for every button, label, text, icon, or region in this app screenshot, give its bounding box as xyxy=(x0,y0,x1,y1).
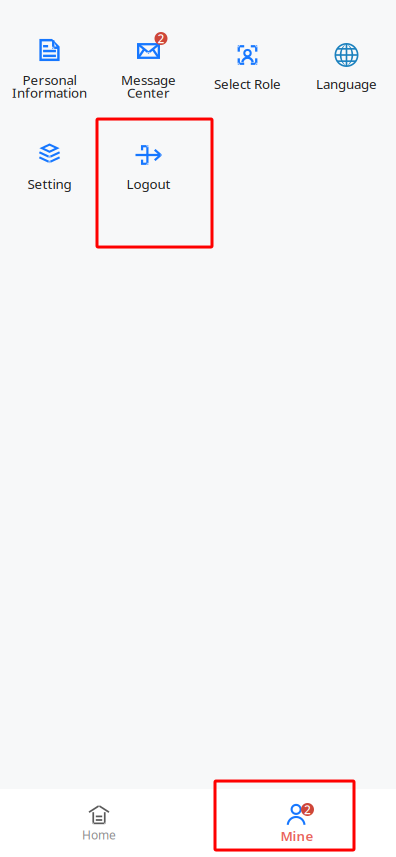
staticText: Home xyxy=(82,827,116,843)
button[interactable]: Language xyxy=(297,0,396,99)
staticText: Select Role xyxy=(214,75,281,93)
staticText: Information xyxy=(12,84,87,101)
button[interactable]: 2 xyxy=(99,0,198,99)
staticText: 2 xyxy=(157,30,164,46)
staticText: Mine xyxy=(280,827,313,845)
button[interactable]: Logout xyxy=(99,99,198,198)
staticText: Personal xyxy=(22,71,76,89)
staticText: 2 xyxy=(304,801,311,817)
staticText: Setting xyxy=(27,175,71,193)
staticText: Center xyxy=(127,84,170,101)
staticText: Logout xyxy=(126,175,170,193)
button[interactable]: Personal xyxy=(0,0,99,99)
button[interactable]: Setting xyxy=(0,99,99,198)
staticText: Message xyxy=(121,71,176,89)
button[interactable]: Home xyxy=(0,789,198,857)
button[interactable]: Select Role xyxy=(198,0,297,99)
staticText: Language xyxy=(316,75,377,93)
button[interactable]: 2 xyxy=(198,789,396,857)
